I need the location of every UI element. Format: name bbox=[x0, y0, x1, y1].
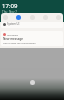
button[interactable]: Messages bbox=[1, 31, 63, 46]
button[interactable]: Bluetooth bbox=[16, 15, 21, 20]
button[interactable]: Wi-Fi bbox=[3, 15, 8, 20]
staticText: System UI bbox=[7, 22, 20, 26]
staticText: 17:09 bbox=[2, 2, 18, 10]
button[interactable]: System UI bbox=[1, 22, 63, 28]
staticText: New message bbox=[3, 37, 23, 41]
staticText: Thu, Nov 7 bbox=[2, 10, 18, 13]
staticText: Tap to open the conversation bbox=[3, 41, 36, 44]
button[interactable]: Do not disturb bbox=[30, 15, 35, 20]
button[interactable]: Auto rotate bbox=[56, 15, 61, 20]
button[interactable]: Collapse shade bbox=[30, 80, 35, 85]
staticText: Messages bbox=[7, 33, 19, 36]
button[interactable]: Flashlight bbox=[43, 15, 48, 20]
